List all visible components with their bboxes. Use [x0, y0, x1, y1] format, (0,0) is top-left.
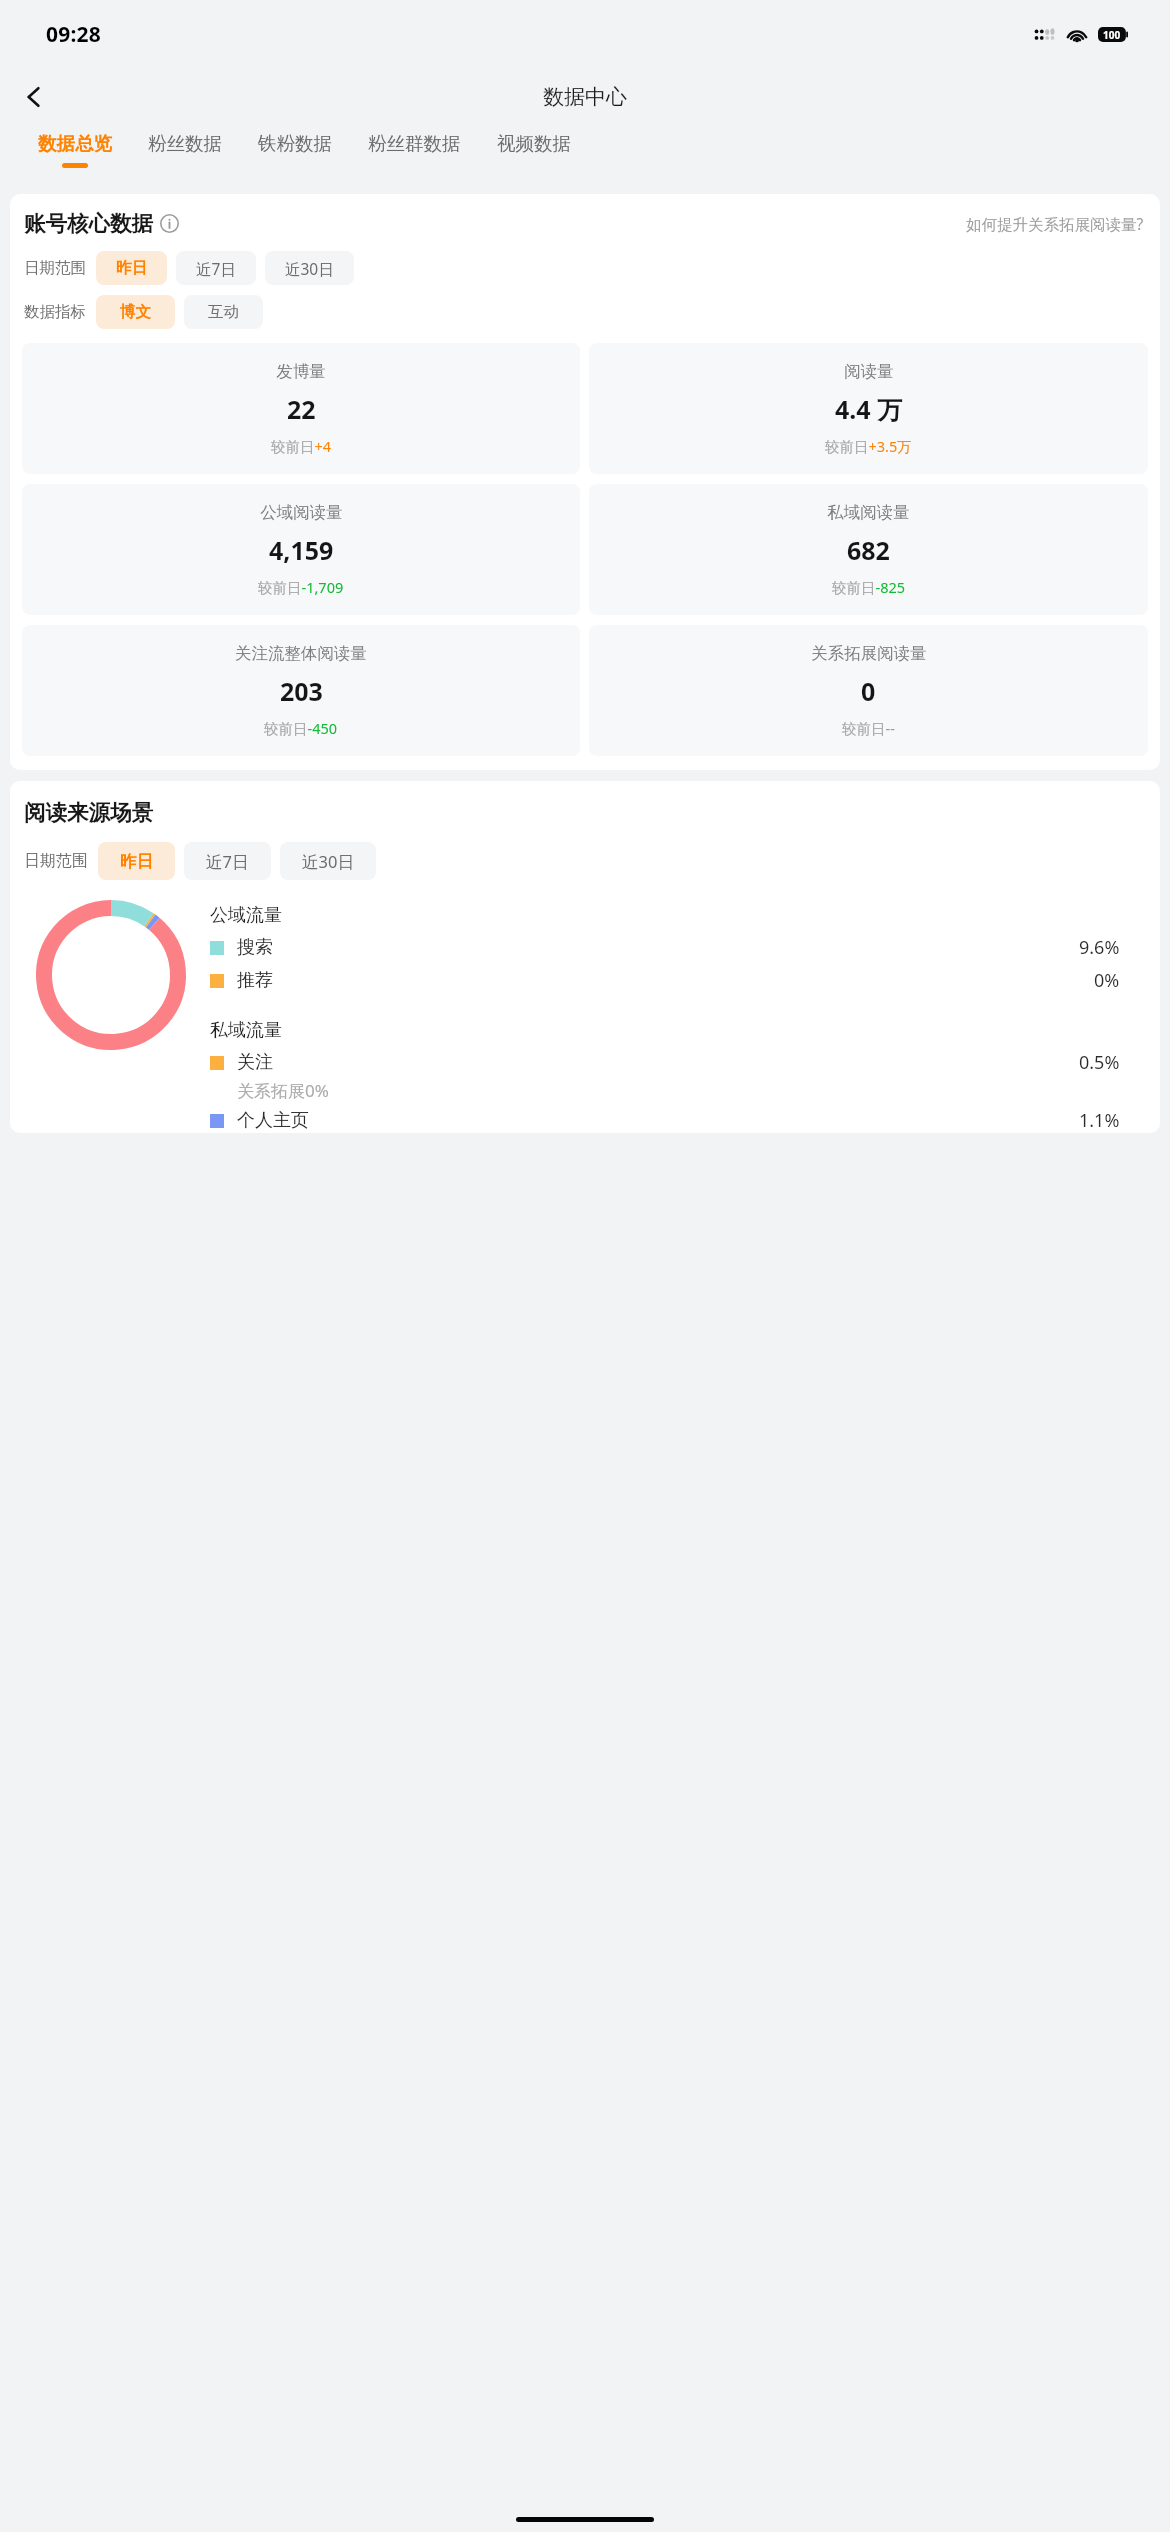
staticText: 视频数据 — [497, 132, 571, 155]
staticText: 较前日+4 — [271, 436, 332, 456]
staticText: 682 — [847, 533, 890, 567]
button[interactable]: 关系拓展阅读量 — [589, 625, 1148, 756]
button[interactable]: 近30日 — [280, 842, 376, 880]
staticText: 如何提升关系拓展阅读量? — [966, 213, 1144, 234]
staticText: 私域阅读量 — [827, 502, 910, 523]
staticText: 近30日 — [285, 258, 334, 279]
staticText: 数据指标 — [24, 302, 86, 322]
button[interactable]: Back — [8, 71, 60, 123]
staticText: 推荐 — [237, 969, 273, 992]
staticText: 账号核心数据 — [24, 210, 153, 237]
staticText: 日期范围 — [24, 851, 88, 871]
button[interactable]: 关注 — [210, 1050, 1148, 1075]
staticText: 关注 — [237, 1051, 273, 1074]
staticText: 私域流量 — [210, 1019, 282, 1042]
staticText: 关系拓展阅读量 — [811, 643, 927, 664]
staticText: 搜索 — [237, 936, 273, 959]
staticText: 0.5% — [1079, 1050, 1120, 1075]
button[interactable]: 数据总览 — [20, 130, 130, 170]
staticText: 203 — [280, 674, 323, 708]
button[interactable]: 博文 — [96, 295, 175, 329]
staticText: 1.1% — [1079, 1108, 1120, 1133]
staticText: 较前日-825 — [832, 577, 906, 597]
staticText: 4.4 万 — [835, 392, 903, 426]
button[interactable]: 公域阅读量 — [22, 484, 580, 615]
button[interactable]: 个人主页 — [210, 1108, 1148, 1133]
staticText: 互动 — [208, 302, 239, 322]
button[interactable]: 粉丝数据 — [130, 130, 240, 165]
button[interactable]: 视频数据 — [479, 130, 589, 165]
button[interactable]: 近7日 — [176, 251, 256, 285]
staticText: 09:28 — [46, 20, 101, 49]
staticText: 发博量 — [276, 361, 326, 382]
staticText: 近30日 — [302, 850, 354, 873]
staticText: 0% — [1094, 968, 1120, 993]
button[interactable]: 互动 — [184, 295, 263, 329]
staticText: 较前日+3.5万 — [825, 436, 912, 456]
staticText: 粉丝群数据 — [368, 132, 461, 155]
staticText: 较前日-1,709 — [258, 577, 344, 597]
button[interactable]: 昨日 — [98, 842, 175, 880]
staticText: 0 — [861, 674, 876, 708]
button[interactable]: 粉丝群数据 — [350, 130, 479, 165]
staticText: 9.6% — [1079, 935, 1120, 960]
button[interactable]: 推荐 — [210, 968, 1148, 993]
staticText: 粉丝数据 — [148, 132, 222, 155]
staticText: 数据总览 — [38, 132, 112, 155]
staticText: 22 — [287, 392, 316, 426]
button[interactable]: Info — [160, 214, 179, 233]
staticText: 较前日-450 — [264, 718, 338, 738]
staticText: 昨日 — [120, 851, 153, 872]
button[interactable]: 近7日 — [184, 842, 271, 880]
button[interactable]: 阅读量 — [589, 343, 1148, 474]
staticText: 昨日 — [116, 258, 147, 278]
staticText: 关注流整体阅读量 — [235, 643, 367, 664]
button[interactable]: 铁粉数据 — [240, 130, 350, 165]
button[interactable]: 近30日 — [265, 251, 354, 285]
button[interactable]: 如何提升关系拓展阅读量? — [964, 211, 1146, 236]
button[interactable]: 发博量 — [22, 343, 580, 474]
staticText: 公域流量 — [210, 904, 282, 927]
staticText: 100 — [1103, 28, 1121, 42]
button[interactable]: 昨日 — [96, 251, 167, 285]
staticText: 近7日 — [196, 258, 236, 279]
staticText: 阅读来源场景 — [24, 799, 153, 826]
staticText: 阅读量 — [844, 361, 894, 382]
staticText: 关系拓展0% — [237, 1079, 329, 1102]
staticText: 数据中心 — [543, 84, 627, 110]
staticText: 博文 — [120, 302, 151, 322]
staticText: 较前日-- — [842, 718, 895, 738]
staticText: 个人主页 — [237, 1109, 309, 1132]
button[interactable]: 搜索 — [210, 935, 1148, 960]
button[interactable]: 关注流整体阅读量 — [22, 625, 580, 756]
staticText: 日期范围 — [24, 258, 86, 278]
staticText: 公域阅读量 — [260, 502, 343, 523]
staticText: 铁粉数据 — [258, 132, 332, 155]
staticText: 近7日 — [206, 850, 249, 873]
button[interactable]: 私域阅读量 — [589, 484, 1148, 615]
staticText: 4,159 — [269, 533, 334, 567]
